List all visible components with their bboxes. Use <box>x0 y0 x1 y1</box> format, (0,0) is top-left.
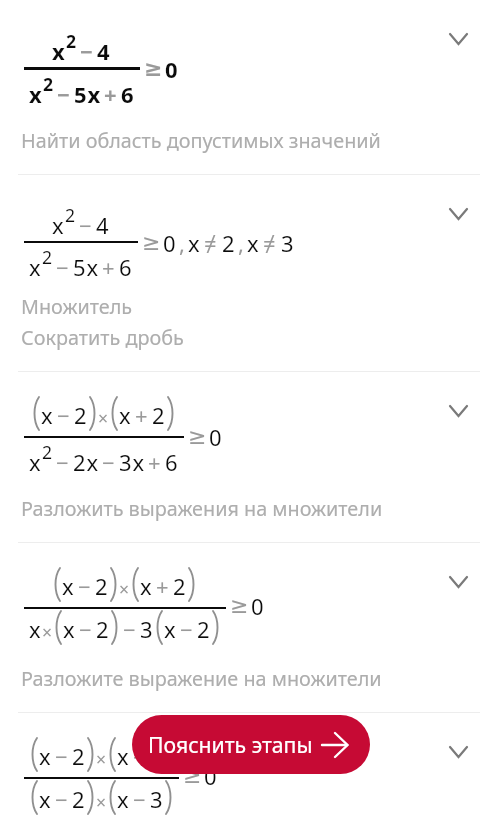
staticText: x <box>117 741 130 771</box>
staticText: 0 <box>163 228 177 258</box>
staticText: 3 <box>140 614 154 644</box>
staticText: − <box>55 784 69 814</box>
staticText: 2 <box>96 614 110 644</box>
staticText: 2 <box>95 571 109 601</box>
staticText: ≥ <box>142 230 162 256</box>
button[interactable]: x <box>0 372 500 542</box>
staticText: x <box>247 228 260 258</box>
staticText: − <box>55 741 69 771</box>
staticText: x <box>29 252 42 282</box>
staticText: × <box>42 620 53 644</box>
button[interactable]: Expand step <box>446 570 470 594</box>
staticText: 3 <box>150 784 164 814</box>
staticText: x <box>52 36 66 66</box>
staticText: x <box>63 614 76 644</box>
staticText: ≥ <box>183 763 203 789</box>
staticText: ≥ <box>188 424 208 450</box>
staticText: − <box>78 571 92 601</box>
staticText: × <box>119 577 130 601</box>
staticText: × <box>96 790 107 814</box>
staticText: 2 <box>152 400 166 430</box>
staticText: − <box>57 400 71 430</box>
button[interactable]: Expand step <box>446 399 470 423</box>
staticText: 3 <box>281 228 295 258</box>
staticText: ≥ <box>230 593 250 619</box>
staticText: + <box>104 79 118 109</box>
staticText: Пояснить этапы <box>148 730 313 759</box>
staticText: + <box>102 252 116 282</box>
staticText: 2 <box>42 245 53 269</box>
staticText: x <box>29 614 42 644</box>
staticText: ≠ <box>263 228 278 258</box>
staticText: − <box>180 614 194 644</box>
staticText: x <box>41 400 54 430</box>
button[interactable]: x <box>0 713 500 817</box>
staticText: ≠ <box>204 228 219 258</box>
staticText: + <box>156 571 170 601</box>
staticText: 4 <box>96 210 110 240</box>
staticText: 3x <box>119 447 145 477</box>
staticText: 5x <box>73 252 99 282</box>
staticText: 2 <box>150 741 164 771</box>
button[interactable]: Expand step <box>446 27 470 51</box>
staticText: ≥ <box>144 56 164 82</box>
staticText: x <box>52 210 65 240</box>
button[interactable]: Expand step <box>446 202 470 226</box>
staticText: 2 <box>173 571 187 601</box>
staticText: 6 <box>121 79 135 109</box>
staticText: − <box>56 447 70 477</box>
staticText: 2x <box>73 447 99 477</box>
staticText: + <box>148 447 162 477</box>
staticText: − <box>123 614 137 644</box>
staticText: 2 <box>65 203 76 227</box>
staticText: , <box>238 228 245 258</box>
staticText: − <box>57 79 71 109</box>
staticText: 2 <box>197 614 211 644</box>
staticText: + <box>133 741 147 771</box>
staticText: − <box>79 210 93 240</box>
staticText: , <box>179 228 186 258</box>
staticText: x <box>188 228 201 258</box>
staticText: 6 <box>165 447 179 477</box>
staticText: 0 <box>165 54 179 84</box>
staticText: 0 <box>204 761 218 791</box>
button[interactable]: x <box>0 175 500 371</box>
staticText: x <box>119 400 132 430</box>
staticText: Разложить выражения на множители <box>21 495 383 522</box>
staticText: x <box>39 784 52 814</box>
staticText: − <box>133 784 147 814</box>
staticText: x <box>29 79 43 109</box>
staticText: x <box>39 741 52 771</box>
staticText: Найти область допустимых значений <box>21 127 381 154</box>
staticText: x <box>62 571 75 601</box>
staticText: + <box>135 400 149 430</box>
staticText: 2 <box>74 400 88 430</box>
staticText: 2 <box>222 228 236 258</box>
staticText: Разложите выражение на множители <box>21 665 382 692</box>
staticText: × <box>98 406 109 430</box>
staticText: 2 <box>72 784 86 814</box>
staticText: x <box>117 784 130 814</box>
staticText: 2 <box>42 440 53 464</box>
staticText: − <box>79 614 93 644</box>
staticText: 2 <box>72 741 86 771</box>
button[interactable]: x <box>0 0 500 174</box>
button[interactable]: x <box>0 543 500 712</box>
staticText: x <box>164 614 177 644</box>
staticText: − <box>56 252 70 282</box>
staticText: × <box>96 747 107 771</box>
staticText: 4 <box>97 36 111 66</box>
staticText: 6 <box>119 252 133 282</box>
staticText: Сократить дробь <box>21 324 184 351</box>
staticText: − <box>80 36 94 66</box>
staticText: Множитель <box>21 293 133 320</box>
button[interactable]: Пояснить этапы <box>132 715 370 774</box>
staticText: x <box>29 447 42 477</box>
staticText: x <box>140 571 153 601</box>
staticText: 5x <box>74 79 101 109</box>
staticText: 0 <box>251 591 265 621</box>
staticText: 2 <box>43 72 54 96</box>
button[interactable]: Expand step <box>446 740 470 764</box>
staticText: 0 <box>209 422 223 452</box>
staticText: − <box>102 447 116 477</box>
